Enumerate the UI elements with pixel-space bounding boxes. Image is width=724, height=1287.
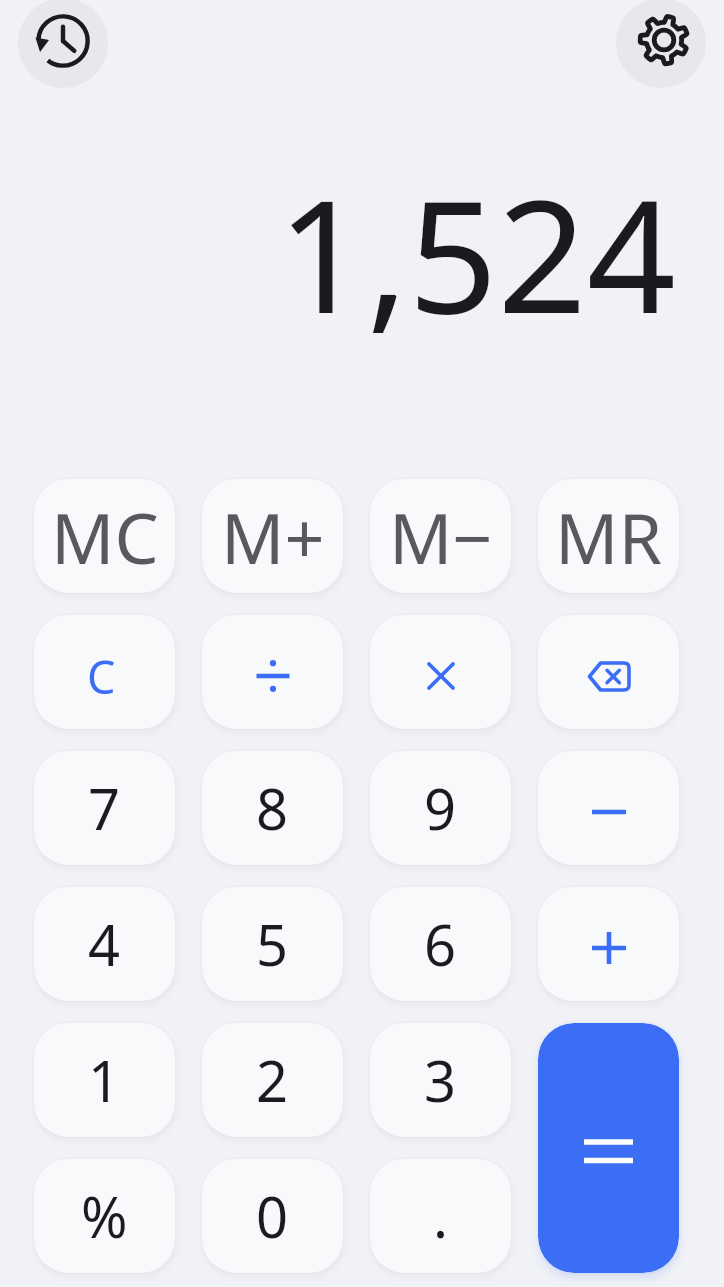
button[interactable]: 2 [202,1023,343,1137]
staticText: 5 [256,906,289,982]
button[interactable]: 8 [202,751,343,865]
staticText: . [433,1178,449,1254]
staticText: 4 [88,906,121,982]
button[interactable]: Divide [202,615,343,729]
staticText: 9 [424,770,457,846]
staticText: M+ [221,489,325,584]
staticText: 3 [424,1042,457,1118]
button[interactable]: M− [370,479,511,593]
button[interactable]: 5 [202,887,343,1001]
button[interactable]: 1 [34,1023,175,1137]
button[interactable]: Plus [538,887,679,1001]
staticText: 2 [256,1042,289,1118]
button[interactable]: MC [34,479,175,593]
staticText: 0 [256,1178,289,1254]
staticText: MR [555,489,663,584]
staticText: MC [51,489,159,584]
button[interactable]: Backspace [538,615,679,729]
button[interactable]: 3 [370,1023,511,1137]
staticText: 6 [424,906,457,982]
button[interactable]: 4 [34,887,175,1001]
button[interactable]: Clear [34,615,175,729]
button[interactable]: Multiply [370,615,511,729]
button[interactable]: Settings [616,0,706,88]
staticText: 1 [88,1042,121,1118]
button[interactable]: % [34,1159,175,1273]
button[interactable]: History [18,0,108,88]
staticText: 7 [88,770,121,846]
button[interactable]: 9 [370,751,511,865]
button[interactable]: 0 [202,1159,343,1273]
button[interactable]: M+ [202,479,343,593]
staticText: M− [389,489,493,584]
button[interactable]: 6 [370,887,511,1001]
button[interactable]: Equals [538,1023,679,1273]
staticText: % [81,1178,128,1254]
staticText: C [87,646,116,707]
button[interactable]: 7 [34,751,175,865]
staticText: 8 [256,770,289,846]
button[interactable]: . [370,1159,511,1273]
button[interactable]: Minus [538,751,679,865]
button[interactable]: MR [538,479,679,593]
staticText: 1,524 [277,146,676,358]
